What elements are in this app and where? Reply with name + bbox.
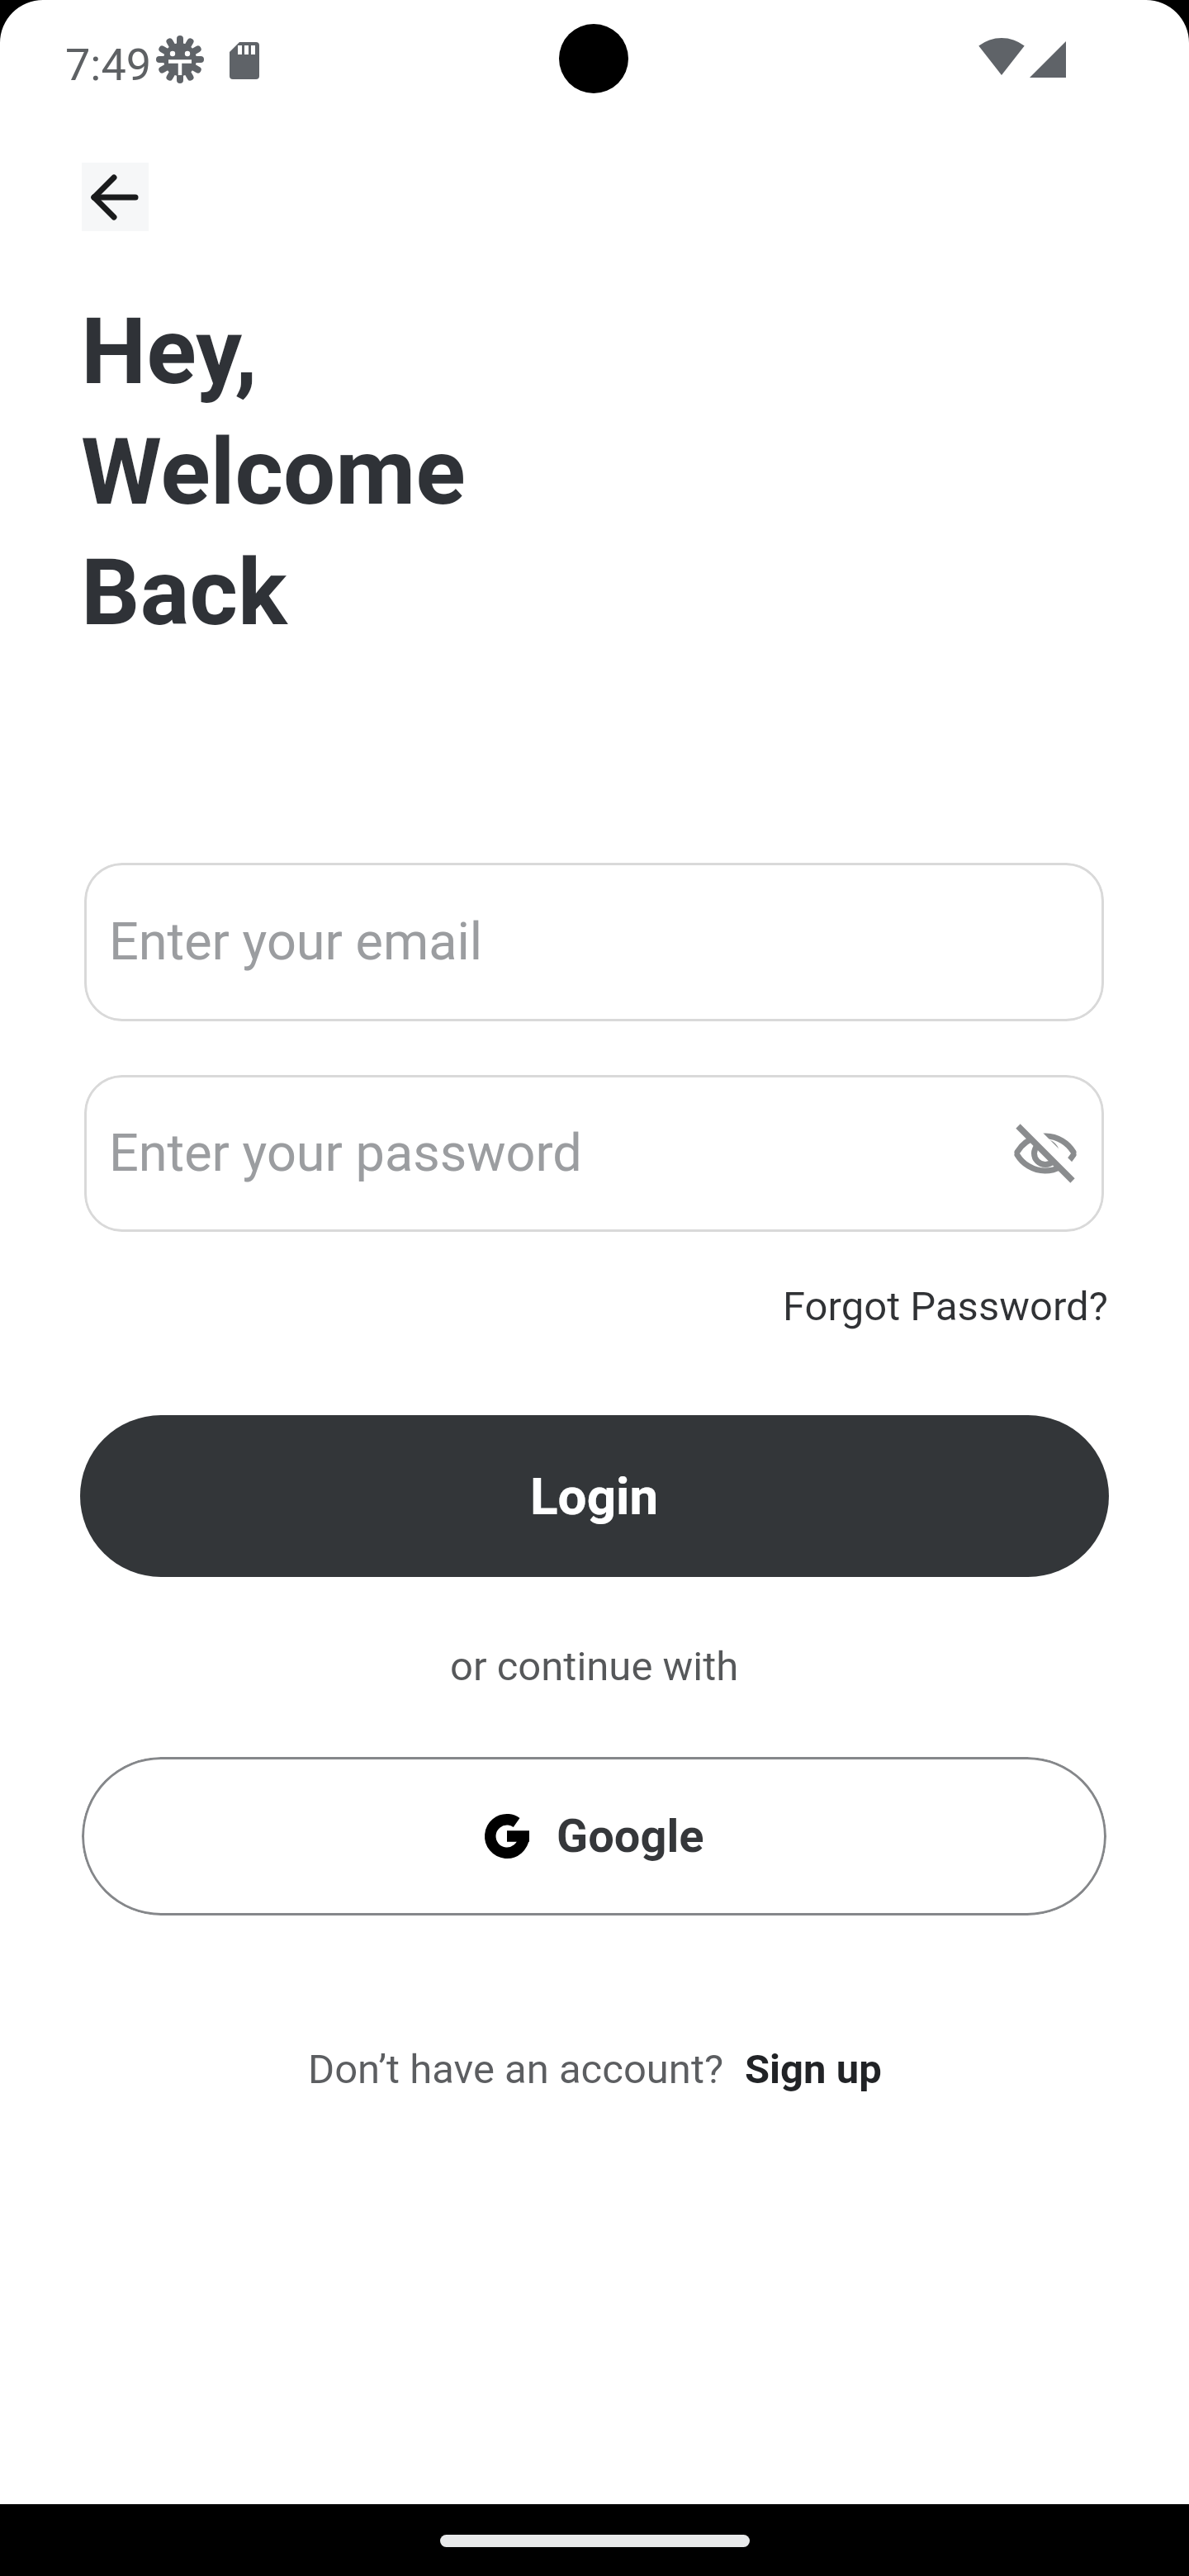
button[interactable]: Enter your password (84, 1075, 1104, 1232)
staticText: Login (530, 1466, 659, 1527)
staticText: Google (557, 1809, 704, 1863)
staticText: Enter your password (109, 1123, 582, 1184)
staticText: 7:49 (65, 39, 152, 91)
button[interactable]: Enter your email (84, 863, 1104, 1021)
staticText: Don’t have an account? (308, 2046, 724, 2093)
button[interactable]: Forgot Password? (783, 1283, 1108, 1330)
staticText: Enter your email (109, 912, 483, 973)
button[interactable]: Google (82, 1757, 1106, 1915)
button[interactable]: Login (80, 1415, 1109, 1577)
staticText: or continue with (450, 1643, 739, 1690)
button[interactable] (82, 163, 149, 231)
staticText: Hey, Welcome Back (81, 297, 466, 646)
button[interactable]: Sign up (745, 2046, 882, 2093)
button[interactable] (1014, 1122, 1077, 1185)
